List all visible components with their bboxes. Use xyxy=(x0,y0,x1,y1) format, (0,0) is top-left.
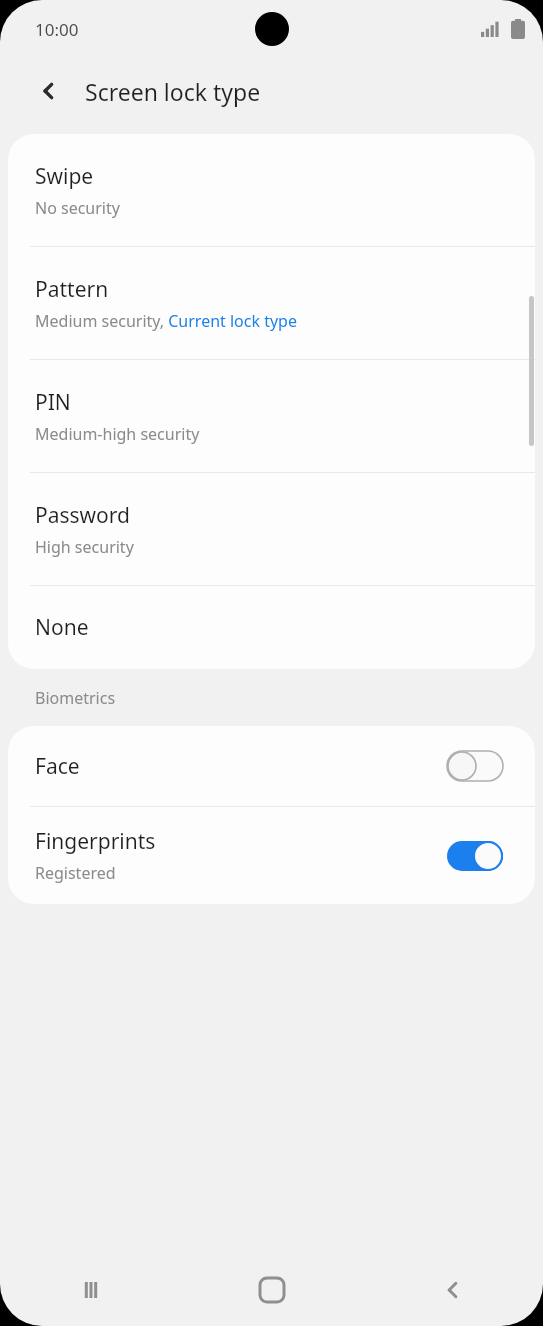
staticText: Medium-high security xyxy=(35,423,200,445)
other: Fingerprints on xyxy=(447,841,503,871)
staticText: Medium security, Current lock type xyxy=(35,310,297,332)
button[interactable]: PIN xyxy=(8,360,535,472)
staticText: Face xyxy=(35,752,80,781)
staticText: Password xyxy=(35,501,130,530)
button[interactable]: Home xyxy=(181,1254,362,1326)
button[interactable]: Pattern xyxy=(8,247,535,359)
staticText: None xyxy=(35,613,89,642)
button[interactable]: Password xyxy=(8,473,535,585)
button[interactable]: Face xyxy=(8,726,535,806)
staticText: 10:00 xyxy=(35,18,79,41)
button[interactable]: Back xyxy=(362,1254,543,1326)
staticText: Fingerprints xyxy=(35,827,156,856)
staticText: Pattern xyxy=(35,275,109,304)
button[interactable]: Fingerprints xyxy=(8,807,535,904)
button[interactable]: Swipe xyxy=(8,134,535,246)
staticText: High security xyxy=(35,536,134,558)
staticText: Screen lock type xyxy=(85,76,261,107)
button[interactable]: None xyxy=(8,586,535,669)
staticText: Biometrics xyxy=(35,687,543,709)
staticText: No security xyxy=(35,197,120,219)
button[interactable]: Back xyxy=(26,68,72,114)
staticText: Swipe xyxy=(35,162,94,191)
button[interactable]: Recent apps xyxy=(0,1254,181,1326)
staticText: Registered xyxy=(35,862,116,884)
other: Face off xyxy=(447,751,503,781)
staticText: PIN xyxy=(35,388,71,417)
